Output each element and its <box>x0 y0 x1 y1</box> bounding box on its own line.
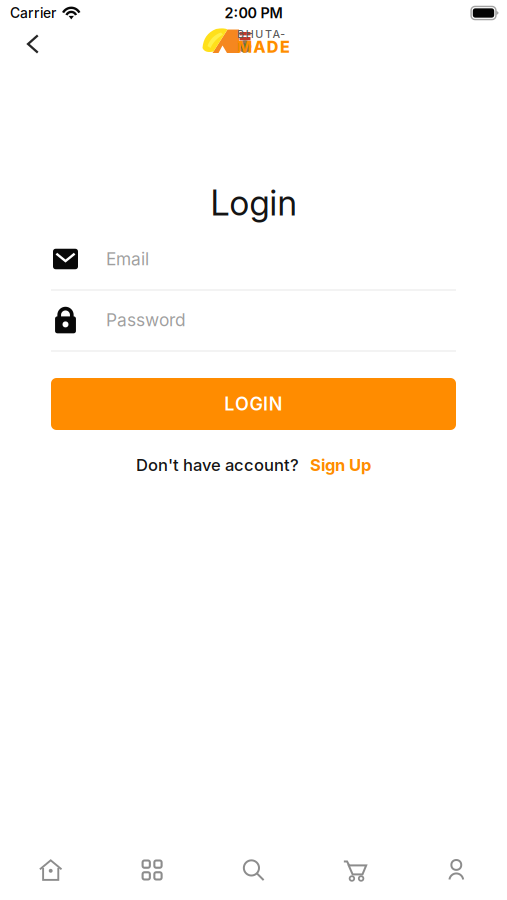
staticText: Sign Up <box>310 455 371 475</box>
staticText: 2:00 PM <box>224 4 282 22</box>
button[interactable]: Back <box>13 27 53 61</box>
staticText: Login <box>210 182 296 224</box>
button[interactable]: Search <box>203 845 304 895</box>
staticText: Don't have account? <box>136 455 299 475</box>
button[interactable]: LOGIN <box>51 378 456 430</box>
button[interactable]: Account <box>406 845 507 895</box>
staticText: BHUTAN <box>237 27 290 41</box>
button[interactable]: Home <box>0 845 101 895</box>
button[interactable]: Categories <box>101 845 203 895</box>
staticText: Carrier <box>10 5 56 21</box>
button[interactable]: Sign Up <box>310 455 371 475</box>
staticText: Email <box>106 248 149 269</box>
button[interactable]: Cart <box>304 845 406 895</box>
staticText: MADE <box>237 37 290 57</box>
staticText: Password <box>106 309 186 330</box>
staticText: LOGIN <box>224 393 283 415</box>
